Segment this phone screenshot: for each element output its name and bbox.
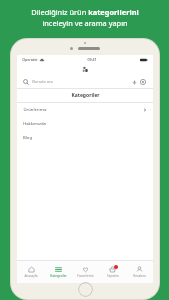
button[interactable]: Kategoriler [45,261,72,283]
staticText: Hakkımızda [23,121,46,127]
button[interactable]: Burada ara [17,75,153,88]
staticText: Operatör [22,57,38,62]
staticText: Burada ara [32,79,53,84]
staticText: Dilediğiniz ürün kategorilerini [31,7,139,17]
staticText: Sepetim [107,274,119,278]
staticText: Ürünlerimiz [23,107,47,113]
staticText: Kategoriler [50,274,67,278]
button[interactable]: Blog [17,131,153,145]
staticText: Kategoriler [71,92,100,99]
button[interactable]: Hesabım [126,261,153,283]
button[interactable]: Hakkımızda [17,117,153,131]
staticText: Blog [23,135,32,141]
staticText: 09:41 [87,57,97,62]
staticText: Favorilerim [77,274,94,278]
staticText: Hesabım [133,274,146,278]
staticText: inceleyin ve arama yapın [42,18,128,28]
button[interactable]: Anasayfa [17,261,45,283]
button[interactable]: Sesli arama [130,78,138,86]
button[interactable]: Ürünlerimiz [17,103,153,117]
button[interactable]: Görsel arama [139,78,147,86]
other: Home [78,282,93,297]
staticText: Anasayfa [24,274,38,278]
button[interactable]: Sepetim [99,261,126,283]
button[interactable]: Favorilerim [72,261,99,283]
